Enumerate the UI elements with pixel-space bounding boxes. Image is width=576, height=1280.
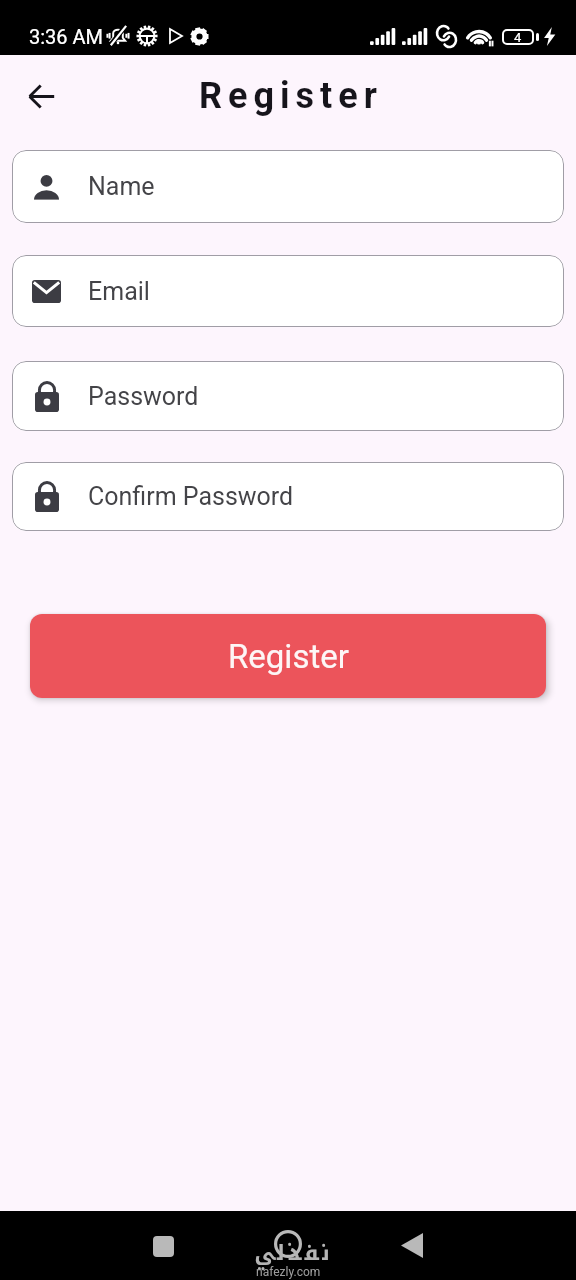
button[interactable]: Password <box>12 361 564 431</box>
staticText: Register <box>199 75 383 117</box>
staticText: نفذلي <box>253 1233 331 1273</box>
button[interactable]: Email <box>12 255 564 327</box>
staticText: Confirm Password <box>88 482 294 511</box>
button[interactable]: Recents <box>138 1221 188 1271</box>
staticText: Register <box>228 637 349 676</box>
button[interactable]: Confirm Password <box>12 462 564 531</box>
button[interactable]: Back <box>18 73 64 119</box>
button[interactable]: Back <box>387 1220 437 1270</box>
staticText: 3:36 AM <box>29 25 104 48</box>
staticText: Password <box>88 382 199 411</box>
staticText: nafezly.com <box>256 1265 321 1279</box>
staticText: 4 <box>514 30 522 45</box>
button[interactable]: Name <box>12 150 564 223</box>
button[interactable]: Register <box>30 614 546 698</box>
staticText: Email <box>88 277 150 306</box>
button[interactable]: Home <box>263 1219 313 1269</box>
staticText: Name <box>88 172 155 201</box>
